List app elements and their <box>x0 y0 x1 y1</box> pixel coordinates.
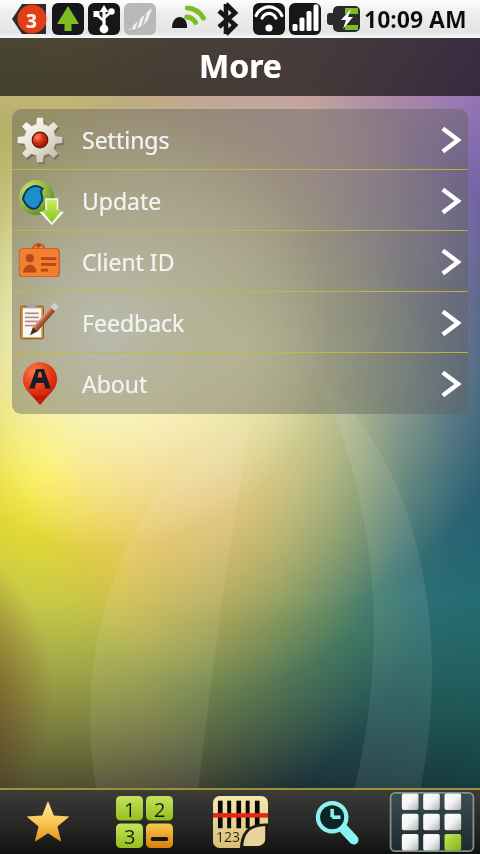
button[interactable]: About <box>12 353 468 414</box>
staticText: About <box>82 368 148 399</box>
staticText: 10:09 AM <box>364 3 467 34</box>
staticText: 2 <box>154 796 166 820</box>
button[interactable]: All apps <box>384 790 480 854</box>
button[interactable]: Client ID <box>12 231 468 292</box>
button[interactable]: Favorites <box>0 790 96 854</box>
button[interactable]: Feedback <box>12 292 468 353</box>
button[interactable]: Update <box>12 170 468 231</box>
staticText: Feedback <box>82 307 185 338</box>
staticText: 1 <box>124 796 136 820</box>
staticText: More <box>199 44 282 88</box>
button[interactable]: Settings <box>12 109 468 170</box>
staticText: Settings <box>82 124 170 155</box>
staticText: 123 <box>216 827 241 846</box>
staticText: 3 <box>26 8 37 34</box>
staticText: 3 <box>124 823 136 848</box>
staticText: Update <box>82 185 162 216</box>
staticText: Client ID <box>82 246 175 277</box>
button[interactable]: Keypad <box>96 790 192 854</box>
button[interactable]: Recent search <box>288 790 384 854</box>
button[interactable]: Barcode scanner <box>192 790 288 854</box>
